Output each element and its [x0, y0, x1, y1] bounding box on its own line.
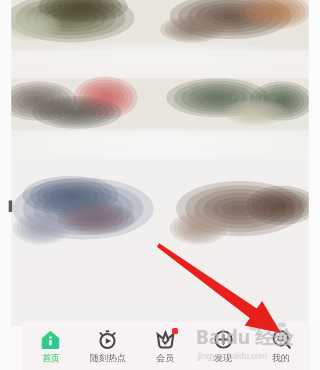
staticText: Baidu 经验	[196, 324, 293, 350]
button[interactable]: 发现	[194, 322, 252, 370]
staticText: 首页	[42, 352, 60, 363]
button[interactable]: 首页	[22, 322, 79, 370]
staticText: 会员	[156, 352, 174, 363]
button[interactable]: 我的	[252, 322, 310, 370]
button[interactable]: 随刻热点	[79, 322, 136, 370]
staticText: jingyan.baidu.com	[198, 350, 268, 361]
staticText: 我的	[272, 352, 290, 363]
staticText: 随刻热点	[90, 352, 126, 363]
button[interactable]: 会员	[136, 322, 194, 370]
staticText: 发现	[214, 352, 232, 363]
